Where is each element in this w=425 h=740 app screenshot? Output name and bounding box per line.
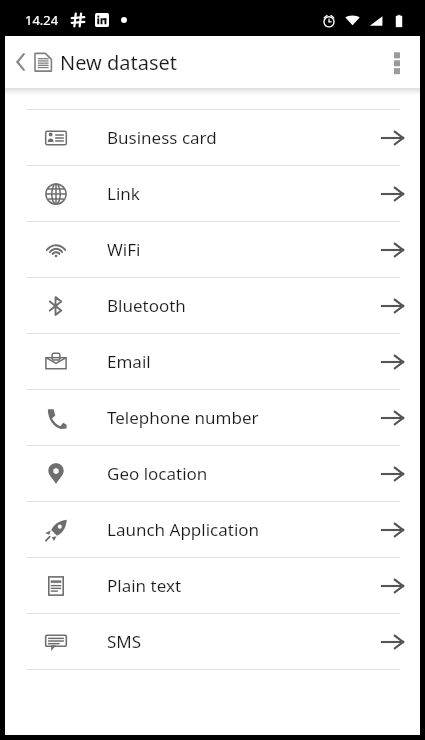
staticText: Telephone number: [107, 406, 259, 429]
staticText: SMS: [107, 630, 142, 653]
button[interactable]: Telephone number: [5, 390, 420, 445]
staticText: New dataset: [60, 49, 178, 76]
button[interactable]: Email: [5, 334, 420, 389]
button[interactable]: Plain text: [5, 558, 420, 613]
button[interactable]: Bluetooth: [5, 278, 420, 333]
staticText: Launch Application: [107, 518, 260, 541]
button[interactable]: SMS: [5, 614, 420, 669]
staticText: WiFi: [107, 238, 141, 261]
staticText: 14.24: [25, 11, 59, 29]
button[interactable]: Navigate up: [5, 44, 61, 80]
button[interactable]: Business card: [5, 110, 420, 165]
staticText: Business card: [107, 126, 217, 149]
staticText: Geo location: [107, 462, 208, 485]
staticText: Email: [107, 350, 151, 373]
staticText: Plain text: [107, 574, 182, 597]
button[interactable]: Launch Application: [5, 502, 420, 557]
button[interactable]: Geo location: [5, 446, 420, 501]
button[interactable]: More options: [374, 36, 420, 88]
button[interactable]: WiFi: [5, 222, 420, 277]
staticText: Bluetooth: [107, 294, 186, 317]
button[interactable]: Link: [5, 166, 420, 221]
staticText: Link: [107, 182, 140, 205]
